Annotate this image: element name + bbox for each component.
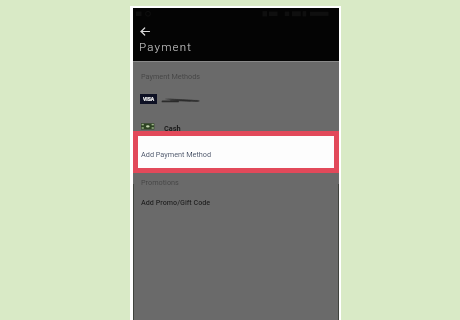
staticText: Cash [164,124,181,133]
staticText: Add Payment Method [141,150,212,159]
button[interactable]: Visa card ending hidden [133,87,339,109]
button[interactable]: Add Payment Method [138,136,334,168]
button[interactable]: Cash [133,117,339,137]
button[interactable]: Back [135,21,157,43]
staticText: Promotions [141,178,179,187]
staticText: Payment [139,40,193,53]
staticText: VISA [143,96,155,102]
staticText: Add Promo/Gift Code [141,198,211,206]
button[interactable]: Add Promo/Gift Code [133,192,339,212]
staticText: Payment Methods [141,72,201,81]
